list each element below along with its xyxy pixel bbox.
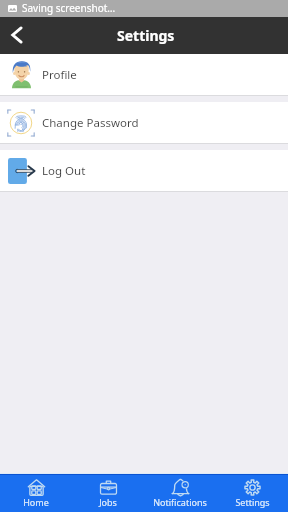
staticText: Profile [42,67,77,83]
staticText: Log Out [42,163,86,179]
button[interactable]: Profile [0,54,288,95]
staticText: Saving screenshot… [22,1,116,15]
button[interactable]: Notifications [144,475,216,512]
staticText: Jobs [99,496,117,508]
button[interactable]: Back [0,20,32,52]
staticText: Notifications [153,496,207,508]
staticText: Settings [235,496,270,508]
button[interactable]: Jobs [72,475,144,512]
staticText: Change Password [42,115,139,131]
staticText: Settings [117,26,175,45]
button[interactable]: Log Out [0,150,288,191]
staticText: Home [23,496,49,508]
button[interactable]: Change Password [0,102,288,143]
button[interactable]: Settings [216,475,288,512]
button[interactable]: Home [0,475,72,512]
